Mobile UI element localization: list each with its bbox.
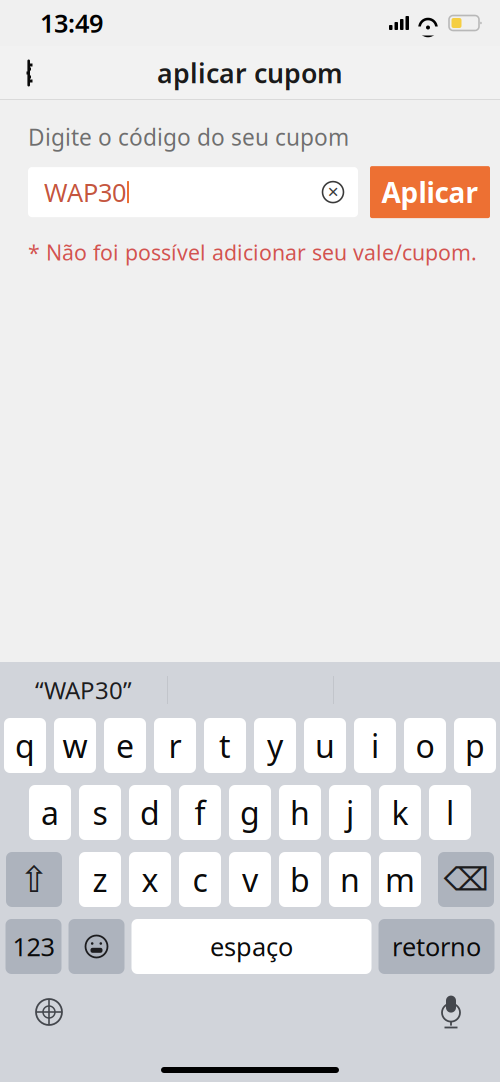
button[interactable]: b [279, 852, 321, 907]
button[interactable]: y [254, 718, 296, 773]
button[interactable]: q [4, 718, 46, 773]
staticText: v [242, 858, 258, 901]
staticText: g [240, 791, 260, 834]
staticText: r [168, 724, 181, 767]
button[interactable]: e [104, 718, 146, 773]
staticText: c [192, 858, 207, 901]
staticText: i [371, 724, 379, 767]
staticText: f [194, 791, 205, 834]
button[interactable]: m [379, 852, 421, 907]
staticText: o [415, 724, 434, 767]
button[interactable]: Maiúsculas [6, 852, 62, 907]
button[interactable]: f [179, 785, 221, 840]
button[interactable]: Aplicar [370, 166, 490, 218]
staticText: retorno [392, 930, 481, 963]
button[interactable]: s [79, 785, 121, 840]
button[interactable]: Limpar texto [320, 179, 350, 205]
button[interactable]: 123 [5, 919, 61, 974]
staticText: “WAP30” [35, 674, 132, 706]
staticText: n [340, 858, 360, 901]
button[interactable]: j [329, 785, 371, 840]
staticText: aplicar cupom [157, 55, 343, 91]
button[interactable]: a [29, 785, 71, 840]
staticText: 123 [12, 930, 54, 963]
button[interactable]: n [329, 852, 371, 907]
button[interactable]: Emoji [68, 919, 124, 974]
button[interactable]: u [304, 718, 346, 773]
staticText: z [92, 858, 107, 901]
staticText: s [92, 791, 107, 834]
button[interactable]: t [204, 718, 246, 773]
button[interactable]: Ditado [424, 988, 478, 1036]
staticText: * Não foi possível adicionar seu vale/cu… [28, 238, 477, 266]
staticText: l [446, 791, 454, 834]
staticText: t [219, 724, 231, 767]
button[interactable]: l [429, 785, 471, 840]
staticText: k [391, 791, 408, 834]
button[interactable]: espaço [131, 919, 371, 974]
staticText: h [290, 791, 310, 834]
staticText: e [116, 724, 134, 767]
staticText: b [290, 858, 310, 901]
staticText: WAP30 [44, 175, 126, 209]
button[interactable]: x [129, 852, 171, 907]
staticText: w [62, 724, 87, 767]
button[interactable]: Apagar [438, 852, 494, 907]
button[interactable]: r [154, 718, 196, 773]
staticText: ✕ [327, 184, 339, 200]
button[interactable]: p [454, 718, 496, 773]
staticText: espaço [210, 930, 293, 963]
button[interactable]: v [229, 852, 271, 907]
button[interactable]: o [404, 718, 446, 773]
staticText: q [15, 724, 35, 767]
staticText: u [315, 724, 335, 767]
button[interactable]: w [54, 718, 96, 773]
staticText: ⌫ [443, 861, 488, 898]
button[interactable]: retorno [378, 919, 494, 974]
staticText: Aplicar [381, 173, 478, 211]
staticText: Digite o código do seu cupom [28, 122, 349, 152]
button[interactable]: d [129, 785, 171, 840]
button[interactable]: g [229, 785, 271, 840]
button[interactable]: c [179, 852, 221, 907]
staticText: a [41, 791, 59, 834]
staticText: x [141, 858, 158, 901]
staticText: d [140, 791, 160, 834]
button[interactable]: Voltar [0, 48, 46, 98]
button[interactable]: Mudar idioma [22, 988, 76, 1036]
button[interactable]: k [379, 785, 421, 840]
staticText: 13:49 [40, 6, 103, 40]
button[interactable]: z [79, 852, 121, 907]
staticText: y [267, 724, 283, 767]
button[interactable]: h [279, 785, 321, 840]
staticText: ⇧ [19, 859, 49, 900]
staticText: m [385, 858, 415, 901]
button[interactable]: i [354, 718, 396, 773]
staticText: p [465, 724, 485, 767]
staticText: j [346, 791, 354, 834]
